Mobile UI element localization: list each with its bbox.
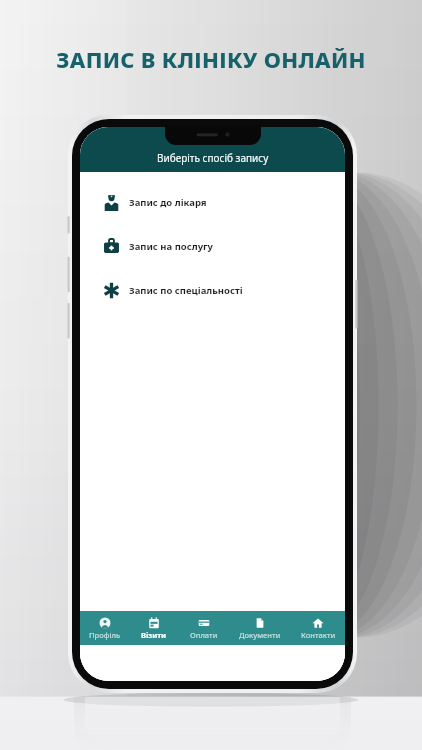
staticText: Візити bbox=[141, 630, 167, 640]
staticText: Документи bbox=[239, 630, 281, 640]
staticText: Оплати bbox=[190, 630, 218, 640]
button[interactable]: Оплати bbox=[179, 611, 229, 645]
staticText: Запис по спеціальності bbox=[129, 284, 243, 297]
button[interactable]: Запис по спеціальності bbox=[80, 268, 345, 312]
staticText: Запис до лікаря bbox=[129, 196, 207, 209]
staticText: Профіль bbox=[89, 630, 121, 640]
staticText: Запис на послугу bbox=[129, 240, 214, 253]
button[interactable]: Запис на послугу bbox=[80, 224, 345, 268]
staticText: Виберіть спосіб запису bbox=[157, 151, 269, 165]
button[interactable]: Запис до лікаря bbox=[80, 180, 345, 224]
staticText: Контакти bbox=[301, 630, 336, 640]
button[interactable]: Контакти bbox=[291, 611, 345, 645]
button[interactable]: Документи bbox=[229, 611, 291, 645]
button[interactable]: Профіль bbox=[80, 611, 129, 645]
staticText: ЗАПИС В КЛІНІКУ ОНЛАЙН bbox=[0, 44, 422, 74]
button[interactable]: Візити bbox=[129, 611, 179, 645]
